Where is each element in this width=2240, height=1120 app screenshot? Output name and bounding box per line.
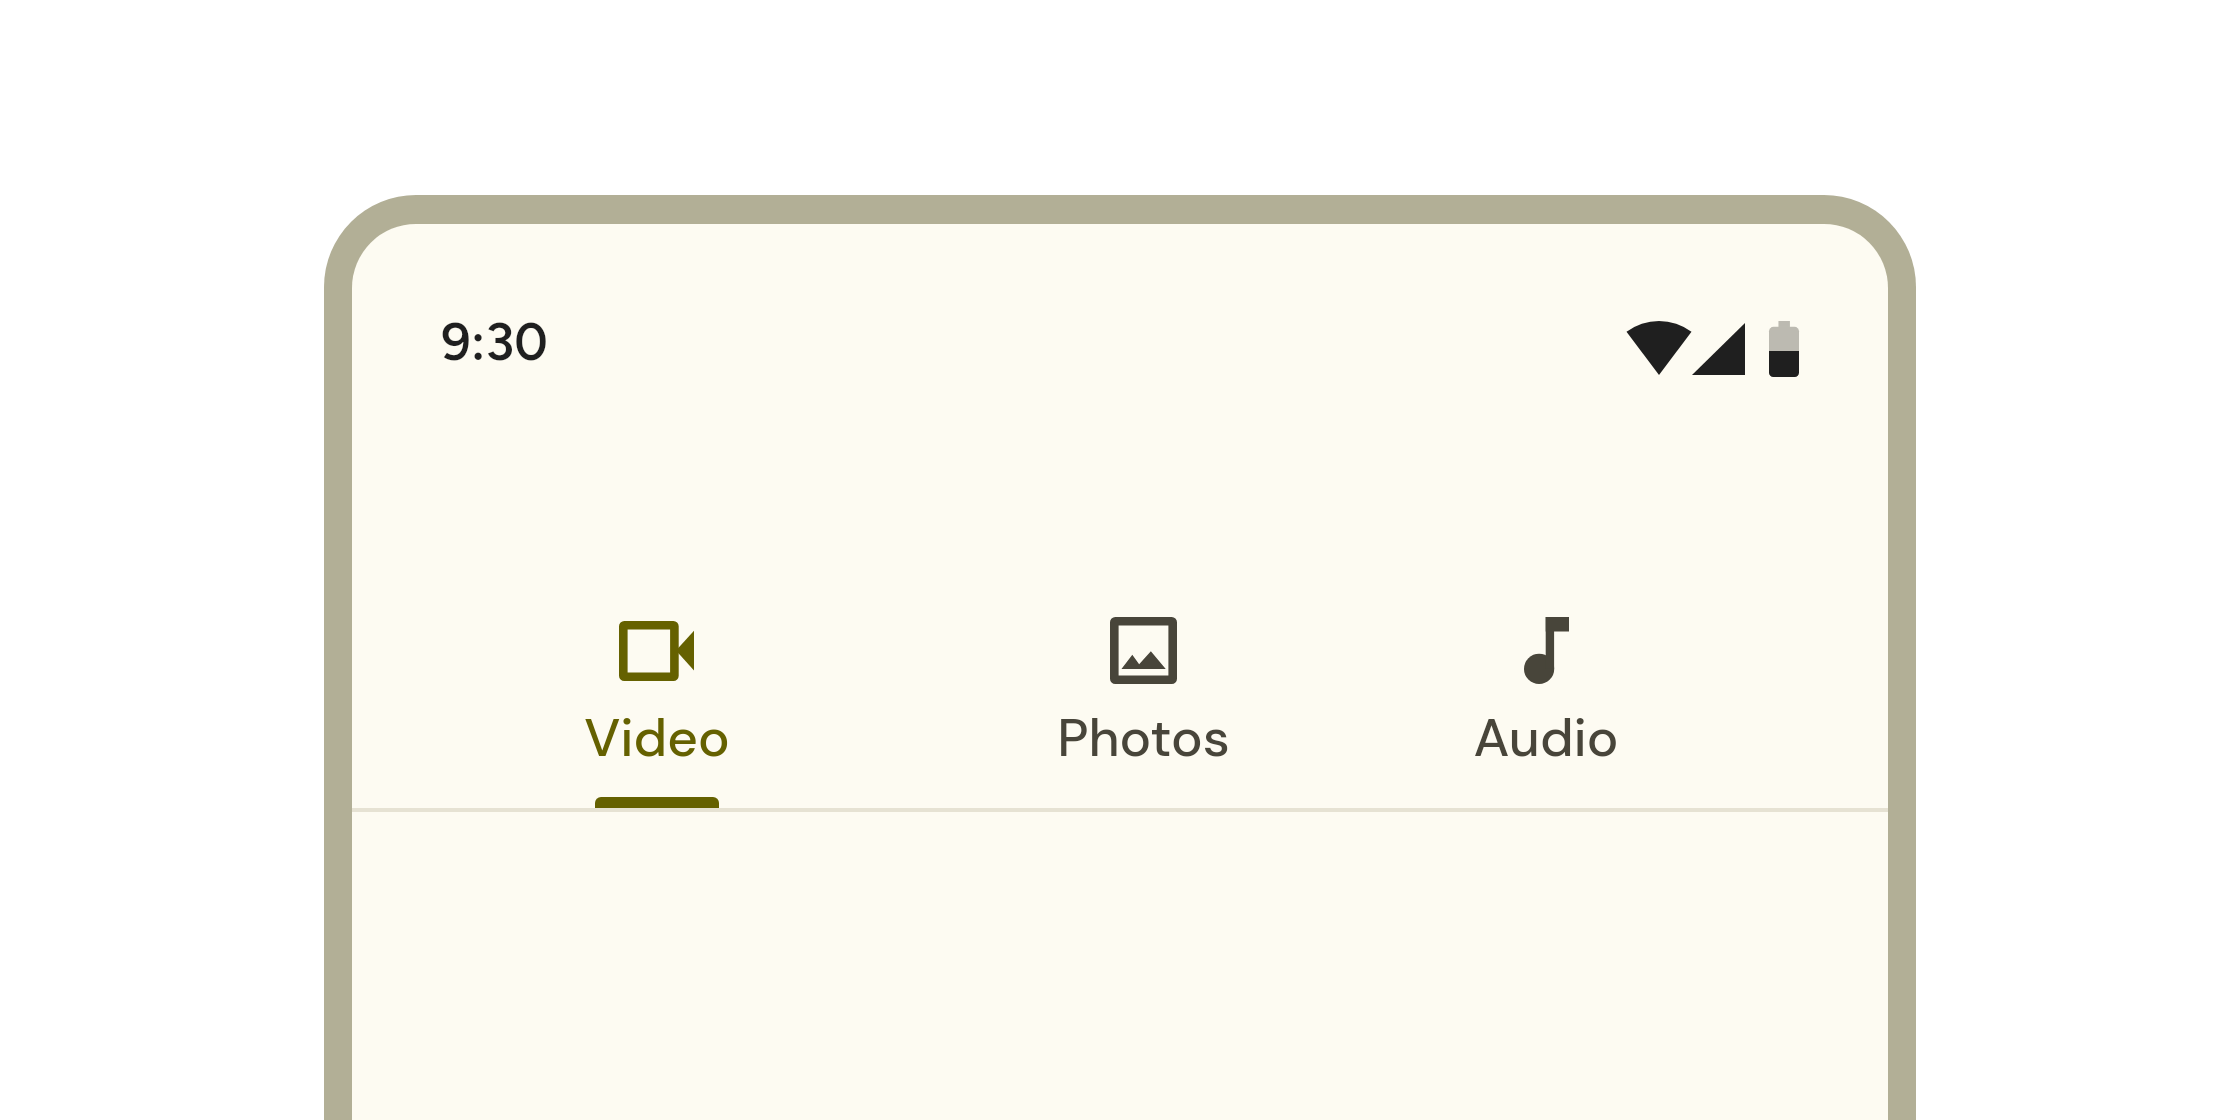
staticText: Video — [584, 703, 730, 772]
button[interactable]: Video — [352, 560, 900, 811]
staticText: Audio — [1473, 703, 1619, 772]
staticText: 9:30 — [441, 311, 548, 373]
button[interactable]: Audio — [1345, 560, 1888, 811]
other: Wi-Fi signal — [1627, 321, 1691, 375]
other: Mobile network signal — [1692, 323, 1745, 375]
staticText: Photos — [1057, 703, 1230, 772]
button[interactable]: Photos — [900, 560, 1345, 811]
other: Battery half charged — [1769, 321, 1799, 377]
